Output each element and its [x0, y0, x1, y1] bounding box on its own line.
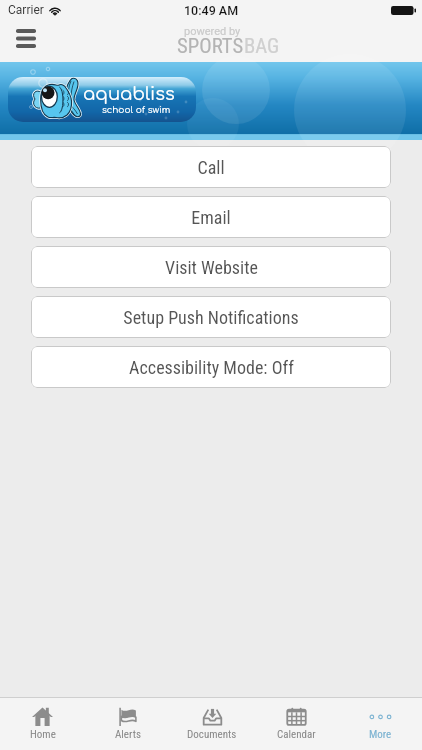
staticText: school of swim: [102, 105, 171, 115]
button[interactable]: Setup Push Notifications: [31, 296, 391, 338]
button[interactable]: Call: [31, 146, 391, 188]
staticText: Setup Push Notifications: [123, 307, 299, 328]
staticText: More: [369, 728, 392, 741]
staticText: Alerts: [115, 728, 141, 741]
button[interactable]: Visit Website: [31, 246, 391, 288]
staticText: Call: [197, 157, 225, 178]
staticText: Documents: [187, 728, 237, 741]
staticText: aquabliss: [83, 84, 175, 104]
button[interactable]: Documents: [170, 698, 254, 750]
staticText: BAG: [244, 34, 280, 58]
button[interactable]: Email: [31, 196, 391, 238]
staticText: 10:49 AM: [184, 3, 239, 18]
staticText: SPORTS: [177, 34, 244, 58]
button[interactable]: More: [338, 698, 422, 750]
staticText: powered by: [184, 25, 241, 38]
staticText: Home: [30, 728, 56, 741]
button[interactable]: Calendar: [254, 698, 338, 750]
staticText: Visit Website: [165, 257, 258, 278]
staticText: Email: [191, 207, 231, 228]
button[interactable]: Menu: [6, 22, 46, 54]
staticText: Accessibility Mode: Off: [129, 357, 294, 378]
button[interactable]: Accessibility Mode: Off: [31, 346, 391, 388]
button[interactable]: Home: [0, 698, 85, 750]
button[interactable]: Alerts: [85, 698, 170, 750]
staticText: Carrier: [8, 3, 44, 17]
staticText: Calendar: [277, 728, 316, 741]
